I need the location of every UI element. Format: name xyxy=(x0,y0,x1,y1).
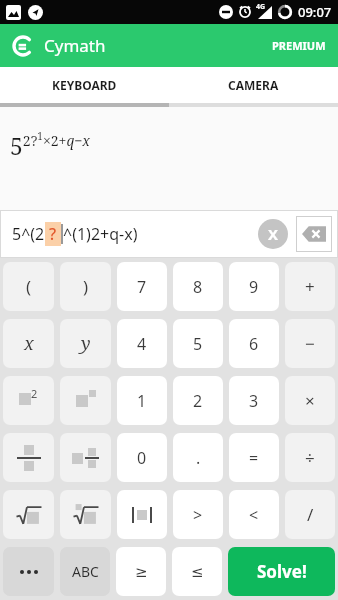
staticText: 8 xyxy=(193,276,203,298)
button[interactable]: 3 xyxy=(229,376,279,425)
staticText: 52?1×2+q−x xyxy=(10,129,90,162)
staticText: 4 xyxy=(137,333,147,355)
button[interactable]: + xyxy=(285,262,335,311)
button[interactable]: ( xyxy=(3,262,54,311)
staticText: . xyxy=(196,447,201,469)
staticText: < xyxy=(249,504,259,526)
button[interactable]: 2 xyxy=(3,376,54,425)
button[interactable] xyxy=(296,216,332,252)
staticText: 9 xyxy=(249,276,259,298)
button[interactable]: 6 xyxy=(229,319,279,368)
button[interactable]: > xyxy=(173,490,223,539)
staticText: 0 xyxy=(137,447,147,469)
staticText: ) xyxy=(83,275,89,298)
button[interactable] xyxy=(3,433,54,482)
staticText: ? xyxy=(49,223,57,245)
staticText: x xyxy=(24,331,34,356)
button[interactable]: − xyxy=(285,319,335,368)
staticText: − xyxy=(305,332,315,355)
button[interactable]: 8 xyxy=(173,262,223,311)
button[interactable]: ) xyxy=(60,262,111,311)
button[interactable] xyxy=(117,490,167,539)
button[interactable] xyxy=(3,490,54,539)
staticText: ( xyxy=(26,275,32,298)
button[interactable]: = xyxy=(229,433,279,482)
staticText: × xyxy=(305,389,315,412)
button[interactable]: x xyxy=(3,319,54,368)
staticText: 1 xyxy=(137,390,147,412)
button[interactable]: 7 xyxy=(117,262,167,311)
button[interactable] xyxy=(60,376,111,425)
button[interactable]: . xyxy=(173,433,223,482)
button[interactable]: 1 xyxy=(117,376,167,425)
staticText: 4G xyxy=(256,2,266,12)
staticText: KEYBOARD xyxy=(52,77,117,93)
staticText: / xyxy=(307,503,314,526)
button[interactable]: 2 xyxy=(173,376,223,425)
staticText: PREMIUM xyxy=(272,38,326,53)
staticText: 5 xyxy=(193,333,203,355)
staticText: X xyxy=(268,224,279,244)
staticText: 09:07 xyxy=(298,3,332,21)
button[interactable] xyxy=(3,547,54,596)
button[interactable]: < xyxy=(229,490,279,539)
staticText: 2 xyxy=(31,386,38,401)
staticText: ≤ xyxy=(191,563,204,580)
button[interactable] xyxy=(60,433,111,482)
button[interactable]: ÷ xyxy=(285,433,335,482)
staticText: 5^(2 xyxy=(12,223,45,245)
staticText: 6 xyxy=(249,333,259,355)
staticText: 7 xyxy=(137,276,147,298)
button[interactable]: KEYBOARD xyxy=(0,67,169,103)
staticText: y xyxy=(81,331,91,356)
staticText: ≥ xyxy=(135,563,148,580)
button[interactable] xyxy=(60,490,111,539)
staticText: + xyxy=(305,275,315,298)
staticText: ^(1)2+q-x) xyxy=(63,223,138,245)
button[interactable]: PREMIUM xyxy=(272,38,326,53)
button[interactable]: 9 xyxy=(229,262,279,311)
staticText: CAMERA xyxy=(228,77,279,93)
button[interactable]: ≥ xyxy=(116,547,166,596)
button[interactable]: × xyxy=(285,376,335,425)
staticText: 3 xyxy=(249,390,259,412)
button[interactable]: Solve! xyxy=(228,547,335,596)
button[interactable]: 0 xyxy=(117,433,167,482)
button[interactable]: / xyxy=(285,490,335,539)
staticText: > xyxy=(193,504,203,526)
button[interactable]: ≤ xyxy=(172,547,222,596)
button[interactable]: y xyxy=(60,319,111,368)
button[interactable]: X xyxy=(258,219,288,249)
staticText: = xyxy=(249,447,259,469)
staticText: ÷ xyxy=(305,446,315,469)
button[interactable]: CAMERA xyxy=(169,67,338,103)
staticText: ABC xyxy=(72,562,99,581)
staticText: 2 xyxy=(193,390,203,412)
button[interactable]: ABC xyxy=(60,547,110,596)
button[interactable]: 4 xyxy=(117,319,167,368)
button[interactable]: 5 xyxy=(173,319,223,368)
staticText: Solve! xyxy=(257,560,307,583)
staticText: Cymath xyxy=(44,34,106,57)
